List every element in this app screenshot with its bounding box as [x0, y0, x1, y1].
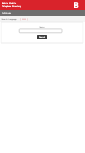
button[interactable]: [37, 35, 47, 39]
button[interactable]: Urdu language: [19, 16, 32, 22]
button[interactable]: Name input: [19, 29, 62, 34]
button[interactable]: Full Version: [0, 10, 16, 16]
button[interactable]: Bahria logo: [72, 1, 81, 9]
